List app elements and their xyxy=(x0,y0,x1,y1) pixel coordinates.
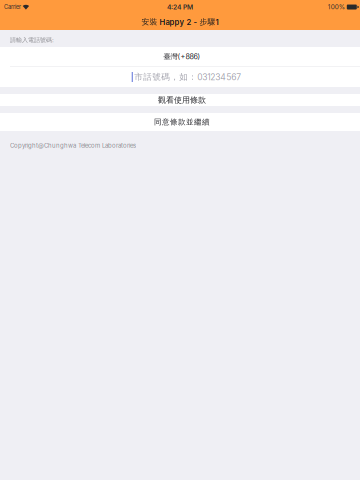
button[interactable]: 市話號碼，如：031234567 xyxy=(0,67,360,87)
staticText: Copyright@Chunghwa Telecom Laboratories xyxy=(10,142,136,149)
staticText: 請輸入電話號碼: xyxy=(10,36,54,44)
staticText: 市話號碼，如：031234567 xyxy=(134,72,241,82)
staticText: 4:24 PM xyxy=(167,3,193,11)
staticText: 臺灣(+886) xyxy=(163,52,200,61)
staticText: 安裝 Happy 2 - 步驟1 xyxy=(141,17,218,27)
staticText: Carrier xyxy=(4,4,21,10)
staticText: 同意條款並繼續 xyxy=(154,117,210,127)
staticText: 觀看使用條款 xyxy=(158,95,206,105)
button[interactable]: 臺灣(+886) xyxy=(0,47,360,66)
button[interactable]: 觀看使用條款 xyxy=(0,94,360,106)
staticText: 100% xyxy=(328,3,345,11)
button[interactable]: 同意條款並繼續 xyxy=(0,113,360,131)
